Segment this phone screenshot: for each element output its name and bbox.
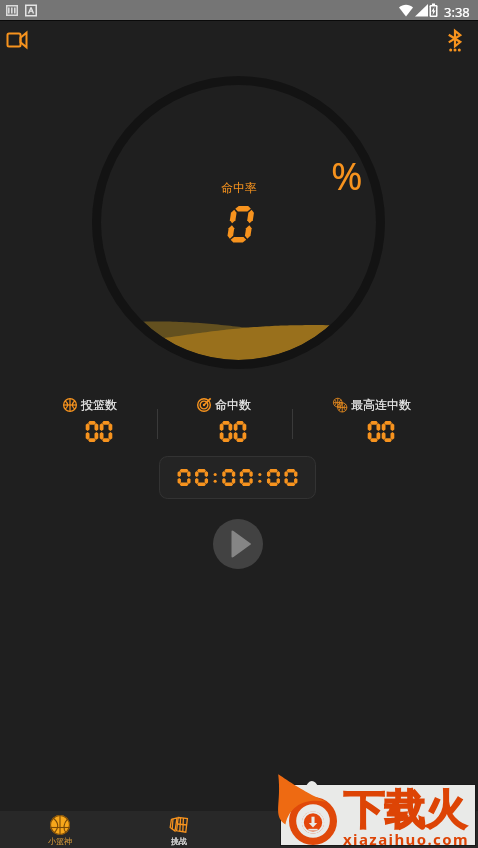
staticText: xiazaihuo.com	[343, 829, 470, 848]
staticText: 命中率	[221, 180, 257, 195]
button[interactable]: Record video	[1, 23, 35, 57]
button[interactable]	[159, 456, 316, 499]
button[interactable]: 挑战	[131, 811, 227, 848]
button[interactable]: 投篮数	[24, 396, 174, 443]
staticText: 排行	[291, 836, 307, 846]
staticText: 我的	[410, 836, 426, 846]
button[interactable]: 最高连中数	[306, 396, 456, 443]
staticText: 3:38	[444, 3, 470, 21]
staticText: 小篮神	[48, 836, 72, 846]
button[interactable]: Bluetooth	[438, 24, 472, 58]
button[interactable]: 小篮神	[12, 811, 108, 848]
staticText: 命中数	[215, 397, 251, 412]
staticText: 下载火	[343, 785, 466, 837]
staticText: 挑战	[171, 836, 187, 846]
staticText: %	[331, 149, 363, 201]
button[interactable]: 排行	[251, 811, 347, 848]
staticText: 投篮数	[81, 397, 117, 412]
button[interactable]: 我的	[370, 811, 466, 848]
staticText: 最高连中数	[351, 397, 411, 412]
button[interactable]: Start	[213, 519, 263, 569]
button[interactable]: 命中数	[158, 396, 308, 443]
